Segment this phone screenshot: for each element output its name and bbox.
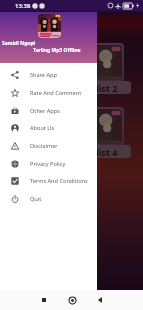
button[interactable]: Share App [0, 66, 97, 84]
button[interactable]: Terms And Conditions [0, 172, 97, 190]
staticText: Other Apps [30, 107, 60, 115]
staticText: Share App [30, 71, 57, 79]
staticText: About Us [30, 124, 55, 132]
staticText: Disclaimer [30, 142, 58, 150]
button[interactable]: Privacy Policy [0, 155, 97, 173]
button[interactable]: Disclaimer [0, 137, 97, 155]
staticText: Rate And Comment [30, 89, 82, 97]
staticText: Privacy Policy [30, 160, 66, 168]
staticText: Tarling Mp3 Offline [33, 47, 81, 54]
staticText: Terms And Conditions [30, 177, 88, 185]
button[interactable]: Back [93, 293, 107, 307]
button[interactable]: Home [65, 293, 79, 307]
staticText: 13:38 [15, 2, 31, 10]
staticText: Sambil Ngopi [2, 40, 36, 47]
button[interactable]: Other Apps [0, 102, 97, 120]
staticText: Quit [30, 195, 42, 203]
staticText: list 4 [96, 146, 118, 158]
staticText: list 2 [96, 82, 118, 94]
button[interactable]: Rate And Comment [0, 84, 97, 102]
button[interactable]: Recents [37, 293, 51, 307]
button[interactable]: About Us [0, 119, 97, 137]
button[interactable]: Quit [0, 190, 97, 208]
